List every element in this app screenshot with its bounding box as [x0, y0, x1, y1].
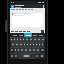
button[interactable]: Period [35, 53, 39, 59]
button[interactable] [33, 37, 37, 42]
button[interactable]: Enter [39, 53, 45, 59]
button[interactable] [41, 37, 45, 42]
button[interactable]: Backspace [40, 47, 45, 53]
button[interactable] [38, 33, 44, 37]
button[interactable]: Volume [5, 20, 7, 32]
button[interactable] [15, 42, 19, 47]
button[interactable] [29, 37, 33, 42]
button[interactable] [19, 37, 22, 42]
button[interactable] [19, 42, 23, 47]
button[interactable] [17, 47, 20, 53]
button[interactable] [23, 42, 26, 47]
button[interactable] [11, 42, 15, 47]
button[interactable] [24, 47, 28, 53]
button[interactable] [24, 33, 32, 37]
button[interactable] [35, 42, 38, 47]
button[interactable] [16, 37, 19, 42]
button[interactable] [22, 37, 25, 42]
button[interactable] [32, 47, 36, 53]
button[interactable] [11, 33, 18, 37]
button[interactable] [38, 42, 41, 47]
button[interactable] [26, 42, 29, 47]
button[interactable] [11, 12, 44, 28]
button[interactable] [36, 47, 40, 53]
button[interactable] [20, 47, 24, 53]
button[interactable]: More options [42, 4, 45, 8]
button[interactable] [28, 47, 32, 53]
button[interactable]: Language [14, 53, 18, 59]
button[interactable] [18, 33, 24, 37]
button[interactable] [37, 37, 41, 42]
button[interactable] [32, 33, 38, 37]
button[interactable]: App icon [11, 5, 14, 8]
button[interactable]: Symbols [10, 53, 14, 59]
button[interactable] [13, 37, 16, 42]
button[interactable] [41, 42, 44, 47]
button[interactable]: Space [18, 53, 35, 59]
button[interactable] [14, 47, 17, 53]
button[interactable] [29, 42, 32, 47]
button[interactable] [25, 37, 29, 42]
button[interactable] [32, 42, 35, 47]
button[interactable] [10, 37, 13, 42]
button[interactable]: Shift [10, 47, 14, 53]
